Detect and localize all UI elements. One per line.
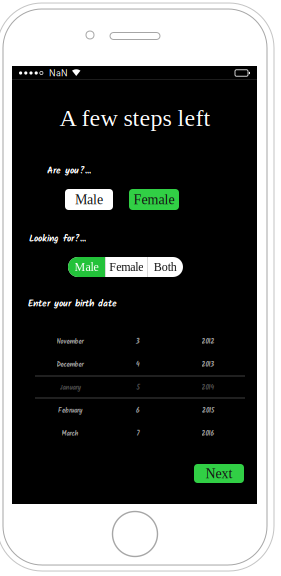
staticText: Next bbox=[205, 466, 232, 481]
button[interactable]: Female bbox=[129, 189, 179, 210]
button[interactable]: Female bbox=[106, 257, 147, 277]
staticText: 4 bbox=[136, 360, 140, 370]
staticText: February bbox=[58, 406, 82, 416]
staticText: 5 bbox=[136, 383, 139, 393]
staticText: 6 bbox=[136, 406, 140, 416]
staticText: 2013 bbox=[201, 360, 214, 370]
staticText: 7 bbox=[136, 429, 139, 439]
staticText: November bbox=[56, 337, 83, 347]
staticText: 2015 bbox=[202, 406, 214, 416]
staticText: 2016 bbox=[201, 429, 214, 439]
button[interactable]: Next bbox=[194, 464, 244, 483]
button[interactable]: Male bbox=[65, 189, 113, 210]
staticText: Female bbox=[133, 192, 174, 207]
staticText: March bbox=[61, 429, 78, 439]
staticText: A few steps left bbox=[59, 105, 210, 131]
staticText: 2012 bbox=[201, 337, 214, 347]
staticText: NaN bbox=[49, 68, 68, 78]
staticText: Male bbox=[75, 192, 103, 207]
staticText: Enter your birth date bbox=[28, 296, 117, 312]
staticText: Looking for?... bbox=[29, 231, 86, 247]
staticText: January bbox=[59, 383, 80, 393]
staticText: 3 bbox=[136, 337, 140, 347]
staticText: Female bbox=[109, 260, 143, 274]
staticText: 2014 bbox=[201, 383, 214, 393]
button[interactable]: Both bbox=[148, 257, 183, 277]
button[interactable]: Male bbox=[68, 257, 105, 277]
staticText: December bbox=[56, 360, 83, 370]
staticText: Male bbox=[74, 260, 98, 274]
staticText: Are you?... bbox=[47, 163, 91, 179]
staticText: Both bbox=[154, 260, 177, 274]
